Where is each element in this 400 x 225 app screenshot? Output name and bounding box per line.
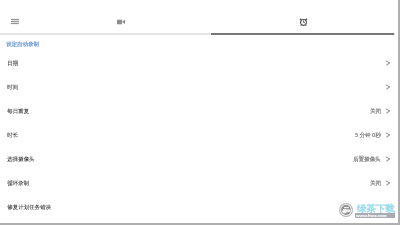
button[interactable]: 循环录制	[0, 171, 395, 195]
staticText: www.fnxz.com	[356, 213, 387, 218]
button[interactable]: Video recording tab	[112, 13, 129, 30]
staticText: 时长	[7, 132, 18, 139]
button[interactable]: 时长	[0, 123, 395, 147]
staticText: 关闭	[370, 180, 381, 187]
staticText: 日期	[7, 60, 18, 67]
staticText: 每日重复	[7, 108, 29, 115]
button[interactable]: 每日重复	[0, 99, 395, 123]
button[interactable]: 修复计划任务错误	[0, 195, 395, 219]
staticText: 选择摄像头	[7, 156, 35, 163]
button[interactable]: 选择摄像头	[0, 147, 395, 171]
staticText: 后置摄像头	[353, 156, 381, 163]
staticText: 5 分钟 0秒	[355, 131, 381, 139]
staticText: 绿茶下载	[357, 203, 395, 215]
button[interactable]: 日期	[0, 51, 395, 75]
staticText: 时间	[7, 84, 18, 91]
staticText: 修复计划任务错误	[7, 204, 51, 211]
button[interactable]: Scheduled recording tab	[295, 13, 312, 30]
staticText: 设定自动录制	[6, 41, 39, 48]
staticText: 关闭	[370, 108, 381, 115]
button[interactable]: 时间	[0, 75, 395, 99]
button[interactable]: Menu	[8, 14, 21, 27]
staticText: 循环录制	[7, 180, 29, 187]
